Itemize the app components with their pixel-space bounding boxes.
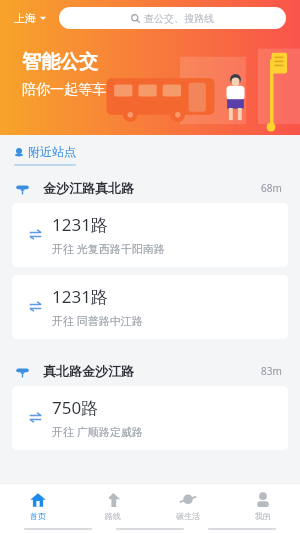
staticText: 首页	[30, 511, 46, 521]
staticText: 路线	[105, 511, 121, 521]
staticText: 开往 广顺路定威路	[52, 424, 143, 439]
staticText: 我的	[255, 511, 271, 521]
staticText: 68m	[261, 181, 282, 195]
staticText: 金沙江路真北路	[43, 180, 134, 196]
button[interactable]: 1231路	[12, 203, 288, 267]
button[interactable]: 750路	[12, 386, 288, 450]
button[interactable]: 查公交、搜路线	[59, 7, 286, 29]
staticText: 1231路	[52, 285, 108, 308]
staticText: 附近站点	[28, 144, 76, 159]
staticText: 83m	[261, 364, 282, 378]
staticText: 上海	[14, 11, 36, 25]
staticText: 陪你一起等车	[22, 81, 106, 99]
button[interactable]: 附近站点	[14, 144, 76, 159]
button[interactable]: 路线	[75, 484, 150, 528]
staticText: 查公交、搜路线	[144, 12, 214, 25]
button[interactable]: 碳生活	[150, 484, 225, 528]
staticText: 开往 光复西路千阳南路	[52, 241, 165, 256]
staticText: 1231路	[52, 213, 108, 236]
button[interactable]: 1231路	[12, 275, 288, 339]
staticText: 智能公交	[22, 50, 98, 74]
button[interactable]: 首页	[0, 484, 75, 528]
button[interactable]: 金沙江路真北路	[0, 174, 300, 203]
button[interactable]: 我的	[225, 484, 300, 528]
button[interactable]: 真北路金沙江路	[0, 357, 300, 386]
staticText: 开往 同普路中江路	[52, 313, 143, 328]
button[interactable]: 上海	[12, 9, 49, 27]
staticText: 真北路金沙江路	[43, 363, 134, 379]
staticText: 碳生活	[176, 511, 200, 521]
staticText: 750路	[52, 396, 99, 419]
